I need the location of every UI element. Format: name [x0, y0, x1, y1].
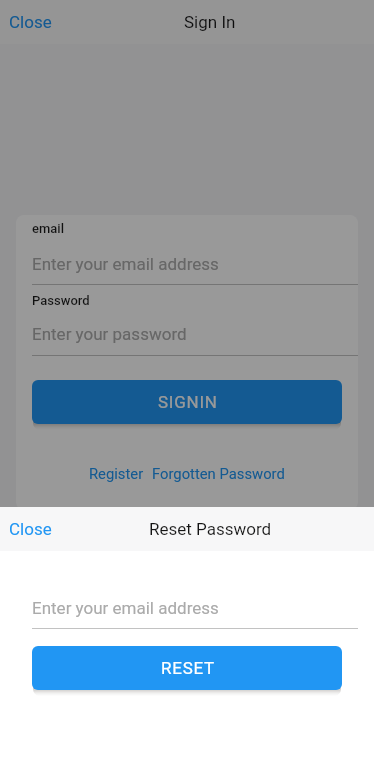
- staticText: Enter your email address: [32, 598, 219, 618]
- staticText: Close: [9, 12, 52, 32]
- staticText: Reset Password: [149, 519, 272, 539]
- button[interactable]: Close: [9, 519, 52, 539]
- button[interactable]: SIGNIN: [32, 380, 342, 424]
- staticText: Enter your email address: [32, 254, 219, 274]
- staticText: Sign In: [184, 12, 236, 32]
- staticText: SIGNIN: [158, 392, 218, 412]
- staticText: Close: [9, 519, 52, 539]
- staticText: Password: [32, 293, 90, 308]
- staticText: Register: [89, 465, 144, 482]
- button[interactable]: Register: [89, 465, 144, 482]
- staticText: Forgotten Password: [152, 465, 285, 482]
- staticText: RESET: [161, 658, 215, 678]
- button[interactable]: Forgotten Password: [152, 465, 285, 482]
- button[interactable]: Close: [9, 12, 52, 32]
- button[interactable]: RESET: [32, 646, 342, 690]
- staticText: email: [32, 221, 64, 236]
- staticText: Enter your password: [32, 324, 187, 344]
